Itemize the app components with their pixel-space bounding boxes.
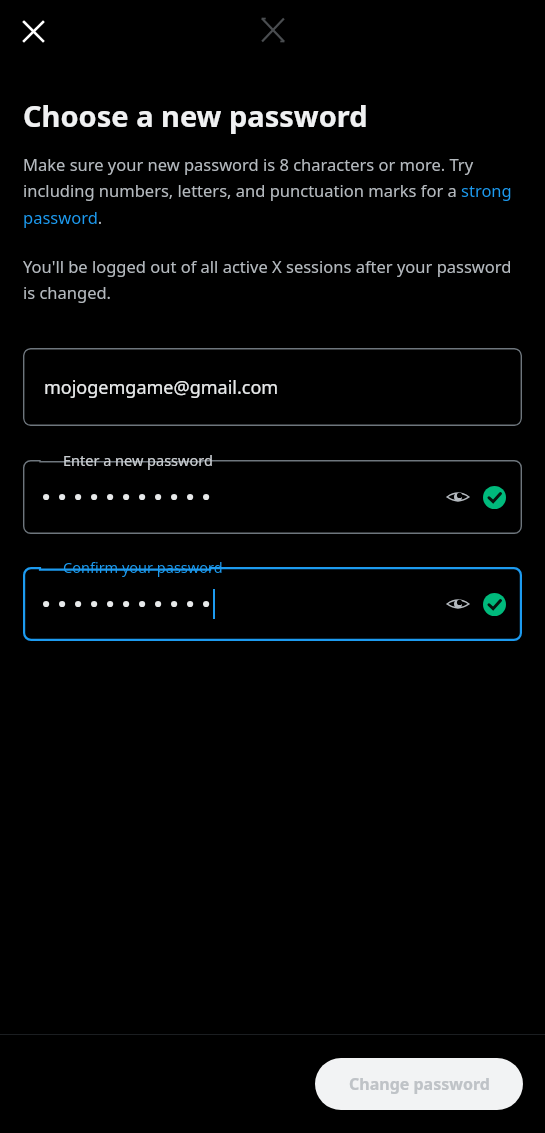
staticText: Change password (349, 1073, 490, 1095)
staticText: Confirm your password (63, 557, 223, 577)
button[interactable]: Change password (315, 1058, 523, 1110)
button[interactable]: mojogemgame@gmail.com (23, 348, 522, 426)
staticText: Enter a new password (63, 450, 213, 470)
staticText: Choose a new password (23, 96, 368, 135)
button[interactable]: Show password (23, 555, 522, 641)
button[interactable]: Show password (23, 448, 522, 534)
staticText: Make sure your new password is 8 charact… (23, 153, 523, 229)
button[interactable]: Close (10, 8, 56, 54)
staticText: mojogemgame@gmail.com (44, 375, 279, 400)
button[interactable]: Show password (441, 480, 475, 514)
staticText: You'll be logged out of all active X ses… (23, 255, 525, 304)
button[interactable]: Show password (441, 587, 475, 621)
